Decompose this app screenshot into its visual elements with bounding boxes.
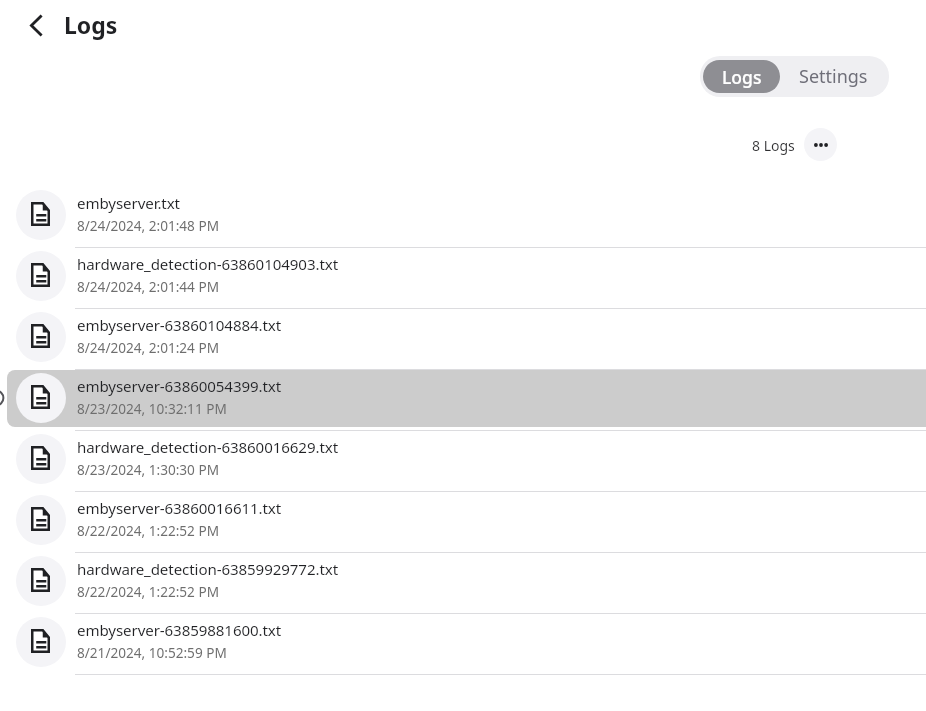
staticText: 8/24/2024, 2:01:48 PM — [77, 216, 219, 235]
staticText: 8/24/2024, 2:01:44 PM — [77, 277, 219, 296]
staticText: 8/21/2024, 10:52:59 PM — [77, 643, 227, 662]
staticText: 8 Logs — [752, 136, 795, 155]
staticText: embyserver-63860016611.txt — [77, 498, 282, 519]
staticText: 8/23/2024, 1:30:30 PM — [77, 460, 219, 479]
button[interactable]: embyserver-63859881600.txt — [0, 611, 926, 672]
button[interactable]: Logs — [703, 60, 780, 93]
staticText: 8/24/2024, 2:01:24 PM — [77, 338, 219, 357]
button[interactable]: embyserver.txt — [0, 184, 926, 245]
button[interactable]: hardware_detection-63859929772.txt — [0, 550, 926, 611]
staticText: embyserver.txt — [77, 193, 180, 214]
staticText: Logs — [722, 65, 762, 89]
button[interactable]: embyserver-63860054399.txt — [0, 367, 926, 428]
staticText: Settings — [799, 64, 868, 89]
button[interactable]: Settings — [780, 57, 889, 97]
staticText: hardware_detection-63859929772.txt — [77, 559, 338, 580]
staticText: embyserver-63859881600.txt — [77, 620, 282, 641]
button[interactable]: hardware_detection-63860016629.txt — [0, 428, 926, 489]
button[interactable]: embyserver-63860104884.txt — [0, 306, 926, 367]
staticText: hardware_detection-63860104903.txt — [77, 254, 338, 275]
staticText: 8/23/2024, 10:32:11 PM — [77, 399, 227, 418]
staticText: hardware_detection-63860016629.txt — [77, 437, 338, 458]
staticText: 8/22/2024, 1:22:52 PM — [77, 521, 219, 540]
staticText: 8/22/2024, 1:22:52 PM — [77, 582, 219, 601]
button[interactable]: embyserver-63860016611.txt — [0, 489, 926, 550]
staticText: Logs — [64, 9, 118, 40]
staticText: embyserver-63860054399.txt — [77, 376, 282, 397]
button[interactable]: More options — [804, 128, 837, 161]
button[interactable]: hardware_detection-63860104903.txt — [0, 245, 926, 306]
button[interactable]: Back — [14, 3, 58, 47]
staticText: embyserver-63860104884.txt — [77, 315, 282, 336]
